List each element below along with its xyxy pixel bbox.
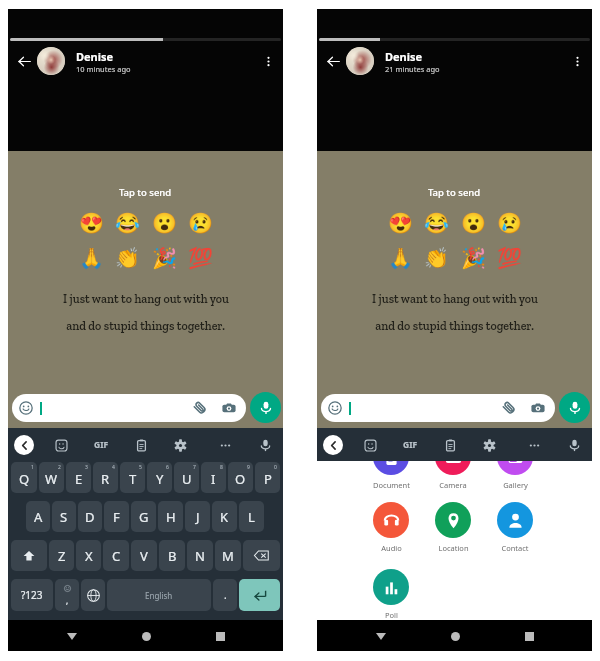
button[interactable]: Profile photo (37, 47, 65, 75)
button[interactable] (12, 394, 246, 422)
button[interactable]: 😍 (79, 210, 104, 235)
button[interactable]: 🎉 (152, 245, 177, 270)
staticText: Denise (385, 49, 423, 64)
button[interactable]: Location (424, 502, 482, 553)
button[interactable]: 4 (93, 462, 118, 493)
button[interactable]: X (76, 540, 101, 571)
button[interactable]: 😮 (461, 210, 486, 235)
button[interactable]: Voice input (564, 435, 584, 455)
staticText: F (113, 508, 120, 526)
button[interactable]: . (213, 579, 237, 611)
button[interactable]: 🎉 (461, 245, 486, 270)
staticText: 💯 (188, 246, 213, 269)
button[interactable]: K (212, 501, 237, 532)
button[interactable]: A (26, 501, 50, 532)
button[interactable]: Recents (209, 625, 231, 647)
button[interactable]: Poll (362, 569, 420, 620)
button[interactable]: Z (49, 540, 74, 571)
staticText: 😢 (188, 211, 213, 234)
button[interactable]: 9 (228, 462, 253, 493)
button[interactable]: Back (11, 48, 37, 74)
button[interactable]: Stickers (360, 435, 380, 455)
button[interactable]: , (55, 579, 79, 611)
button[interactable]: ?123 (11, 579, 53, 611)
button[interactable]: 🙏 (388, 245, 413, 270)
staticText: X (85, 547, 93, 565)
button[interactable]: 😢 (188, 210, 213, 235)
button[interactable]: Back (61, 625, 83, 647)
button[interactable]: Home (135, 625, 157, 647)
button[interactable]: Audio (362, 502, 420, 553)
button[interactable]: Stickers (51, 435, 71, 455)
button[interactable]: Enter (239, 579, 280, 611)
button[interactable]: 7 (174, 462, 199, 493)
button[interactable]: Back (370, 625, 392, 647)
button[interactable]: Voice input (255, 435, 275, 455)
button[interactable] (11, 540, 47, 571)
button[interactable]: S (52, 501, 76, 532)
button[interactable] (321, 394, 555, 422)
button[interactable]: 🙏 (79, 245, 104, 270)
button[interactable]: L (239, 501, 264, 532)
button[interactable]: Voice message (250, 392, 281, 423)
button[interactable]: 0 (255, 462, 280, 493)
button[interactable]: Gallery (486, 461, 544, 490)
button[interactable]: 6 (147, 462, 172, 493)
button[interactable]: Clipboard (440, 435, 460, 455)
button[interactable]: Contact (486, 502, 544, 553)
staticText: and do stupid things together. (375, 319, 534, 333)
button[interactable]: F (104, 501, 129, 532)
button[interactable]: 😂 (424, 210, 449, 235)
button[interactable]: More options (257, 50, 279, 72)
button[interactable]: GIF (399, 434, 421, 456)
button[interactable] (243, 540, 280, 571)
staticText: 😮 (152, 211, 177, 234)
button[interactable]: M (215, 540, 241, 571)
button[interactable]: GIF (90, 434, 112, 456)
button[interactable] (81, 579, 105, 611)
button[interactable]: B (159, 540, 185, 571)
button[interactable]: Profile photo (346, 47, 374, 75)
button[interactable]: Home (444, 625, 466, 647)
button[interactable]: Settings (170, 435, 190, 455)
button[interactable]: 👏 (424, 245, 449, 270)
button[interactable]: 1 (11, 462, 37, 493)
button[interactable]: D (78, 501, 102, 532)
button[interactable]: Recents (518, 625, 540, 647)
staticText: GIF (94, 439, 109, 451)
staticText: 😍 (388, 211, 413, 234)
button[interactable]: V (131, 540, 157, 571)
button[interactable]: 💯 (497, 245, 522, 270)
button[interactable]: More (524, 435, 544, 455)
button[interactable]: Collapse keyboard (14, 435, 34, 455)
button[interactable]: J (185, 501, 210, 532)
button[interactable]: 😮 (152, 210, 177, 235)
button[interactable]: 2 (39, 462, 64, 493)
button[interactable]: Voice message (559, 392, 590, 423)
button[interactable]: N (187, 540, 213, 571)
button[interactable]: Camera (424, 461, 482, 490)
button[interactable]: C (103, 540, 129, 571)
button[interactable]: English (107, 579, 211, 611)
button[interactable]: More options (566, 50, 588, 72)
staticText: O (235, 470, 246, 488)
button[interactable]: 3 (66, 462, 91, 493)
button[interactable]: Collapse keyboard (323, 435, 343, 455)
button[interactable]: More (215, 435, 235, 455)
button[interactable]: 😢 (497, 210, 522, 235)
button[interactable]: 8 (201, 462, 226, 493)
button[interactable]: Settings (479, 435, 499, 455)
button[interactable]: Document (362, 461, 420, 490)
staticText: 🙏 (388, 246, 413, 269)
button[interactable]: Back (320, 48, 346, 74)
button[interactable]: 💯 (188, 245, 213, 270)
button[interactable]: 5 (120, 462, 145, 493)
button[interactable]: Clipboard (131, 435, 151, 455)
button[interactable]: G (131, 501, 156, 532)
button[interactable]: 😍 (388, 210, 413, 235)
button[interactable]: 😂 (115, 210, 140, 235)
staticText: Poll (385, 610, 398, 620)
button[interactable]: H (158, 501, 183, 532)
staticText: GIF (403, 439, 418, 451)
button[interactable]: 👏 (115, 245, 140, 270)
